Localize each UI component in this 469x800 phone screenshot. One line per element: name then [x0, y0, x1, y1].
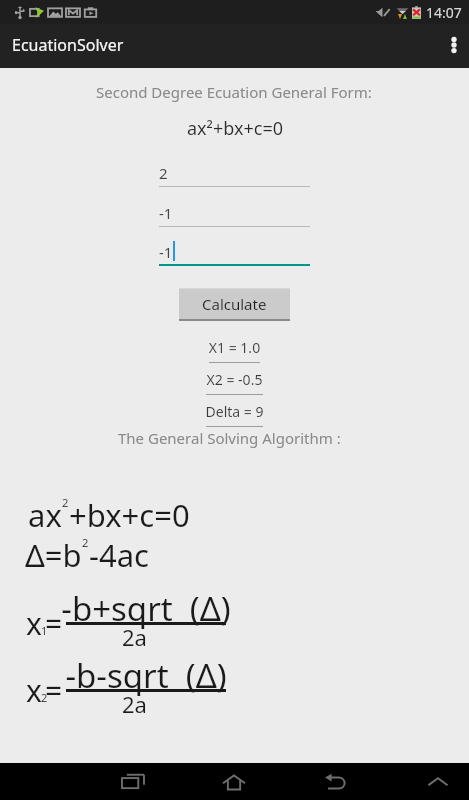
- button[interactable]: Recents: [110, 763, 156, 800]
- staticText: 2: [41, 690, 48, 705]
- staticText: 2a: [122, 689, 147, 719]
- staticText: -b+sqrt (Δ): [46, 586, 246, 631]
- button[interactable]: -1: [159, 197, 310, 227]
- staticText: +bx+c=0: [69, 494, 190, 536]
- staticText: Calculate: [202, 294, 267, 314]
- staticText: =: [45, 670, 63, 711]
- staticText: X2 = -0.5: [199, 370, 270, 389]
- button[interactable]: X1 = 1.0: [199, 338, 270, 362]
- staticText: ax²+bx+c=0: [187, 116, 283, 141]
- staticText: 1: [41, 623, 48, 638]
- button[interactable]: Calculate: [179, 288, 290, 321]
- staticText: EcuationSolver: [12, 34, 124, 56]
- button[interactable]: More options: [429, 24, 469, 68]
- staticText: Second Degree Ecuation General Form:: [96, 82, 372, 102]
- button[interactable]: Back: [313, 763, 359, 800]
- staticText: x: [26, 603, 42, 644]
- button[interactable]: Show menu: [415, 763, 461, 800]
- button[interactable]: Home: [211, 763, 257, 800]
- staticText: -1: [159, 203, 173, 223]
- staticText: The General Solving Algorithm :: [118, 428, 341, 448]
- staticText: X1 = 1.0: [199, 338, 270, 357]
- button[interactable]: X2 = -0.5: [199, 370, 270, 394]
- staticText: x: [26, 670, 42, 711]
- staticText: 2: [62, 495, 69, 510]
- staticText: 2: [82, 535, 89, 550]
- staticText: ax: [28, 494, 62, 536]
- button[interactable]: Delta = 9: [199, 402, 270, 426]
- staticText: Δ=b: [25, 534, 82, 576]
- staticText: =: [45, 603, 63, 644]
- staticText: -b-sqrt (Δ): [46, 653, 246, 698]
- button[interactable]: 2: [159, 157, 310, 187]
- staticText: 14:07: [426, 3, 462, 22]
- button[interactable]: -1: [159, 236, 310, 266]
- staticText: -1: [159, 242, 173, 262]
- staticText: 2: [159, 163, 168, 183]
- staticText: 2a: [122, 622, 147, 652]
- staticText: -4ac: [89, 534, 149, 576]
- staticText: Delta = 9: [199, 402, 270, 421]
